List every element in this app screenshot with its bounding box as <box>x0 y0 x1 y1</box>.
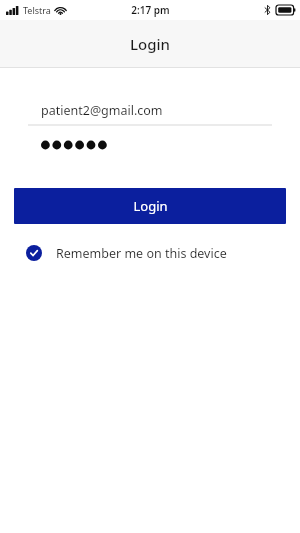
staticText: Telstra <box>23 4 51 16</box>
staticText: Login <box>133 197 168 215</box>
button[interactable]: Login <box>14 188 286 224</box>
staticText: Login <box>130 34 170 54</box>
button[interactable]: Remember me on this device <box>0 239 300 267</box>
staticText: Remember me on this device <box>56 245 227 262</box>
button[interactable]: patient2@gmail.com <box>0 96 300 124</box>
staticText: patient2@gmail.com <box>41 102 163 119</box>
button[interactable]: Password <box>0 132 300 158</box>
staticText: 2:17 pm <box>131 3 170 17</box>
